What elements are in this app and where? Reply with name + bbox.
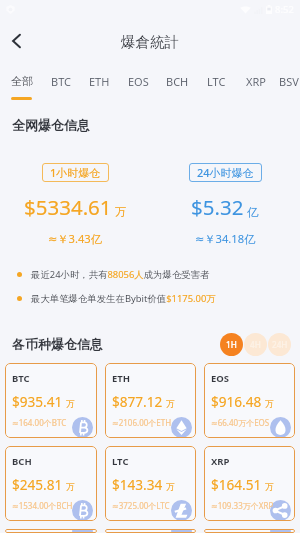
staticText: BTC: [12, 372, 30, 385]
staticText: 万: [66, 399, 75, 410]
staticText: 万: [166, 482, 175, 493]
staticText: 最近24小时，共有88056人成为爆仓受害者: [31, 268, 210, 281]
staticText: 爆倉統計: [121, 33, 179, 51]
button[interactable]: BSV: [275, 62, 300, 100]
staticText: LTC: [207, 74, 226, 89]
staticText: 24H: [272, 339, 288, 350]
staticText: $245.81: [12, 475, 63, 494]
button[interactable]: 4H: [244, 333, 267, 356]
button[interactable]: EOS: [119, 62, 158, 100]
staticText: 万: [265, 482, 274, 493]
staticText: ≈￥3.43亿: [48, 231, 102, 246]
button[interactable]: BCH: [5, 446, 97, 521]
staticText: 全网爆仓信息: [12, 117, 90, 133]
staticText: $916.48: [211, 392, 262, 411]
staticText: LTC: [112, 455, 129, 468]
staticText: 1H: [226, 339, 237, 350]
button[interactable]: 全部: [2, 62, 41, 100]
button[interactable]: LTC: [105, 446, 196, 521]
button[interactable]: XRP: [236, 62, 275, 100]
staticText: $877.12: [112, 392, 163, 411]
button[interactable]: XRP: [204, 446, 295, 521]
button[interactable]: EOS: [204, 363, 295, 438]
button[interactable]: ETH: [105, 363, 196, 438]
staticText: 万: [265, 399, 274, 410]
staticText: ≈109.33万个XRP: [211, 500, 274, 511]
staticText: ETH: [112, 372, 131, 385]
button[interactable]: 1H: [220, 333, 243, 356]
button[interactable]: BTC: [41, 62, 80, 100]
staticText: 4H: [250, 339, 261, 350]
staticText: 各币种爆仓信息: [12, 336, 103, 352]
staticText: BCH: [166, 74, 189, 89]
staticText: BSV: [279, 74, 299, 89]
staticText: $5334.61: [24, 193, 112, 221]
button[interactable]: ETC: [5, 529, 97, 533]
staticText: 1小时爆仓: [50, 165, 101, 180]
staticText: $164.51: [211, 475, 262, 494]
staticText: ≈2106.00个ETH: [112, 417, 172, 428]
staticText: ≈164.00个BTC: [12, 417, 67, 428]
staticText: 万: [166, 399, 175, 410]
staticText: 最大单笔爆仓单发生在Bybit价值$1175.00万: [31, 292, 216, 305]
staticText: 全部: [11, 74, 33, 88]
button[interactable]: TRX: [105, 529, 196, 533]
staticText: 万: [66, 482, 75, 493]
button[interactable]: Back: [0, 19, 33, 62]
button[interactable]: ETH: [80, 62, 119, 100]
staticText: ≈1534.00个BCH: [12, 500, 73, 511]
button[interactable]: 1小时爆仓: [42, 163, 109, 182]
button[interactable]: BCH: [158, 62, 197, 100]
staticText: ≈3725.00个LTC: [112, 500, 170, 511]
button[interactable]: 24小时爆仓: [189, 163, 262, 182]
button[interactable]: BSV: [204, 529, 295, 533]
staticText: EOS: [211, 372, 230, 385]
staticText: 万: [115, 205, 127, 219]
staticText: $143.34: [112, 475, 163, 494]
staticText: XRP: [246, 74, 266, 89]
staticText: XRP: [211, 455, 230, 468]
staticText: ≈66.40万个EOS: [211, 417, 270, 428]
staticText: ETH: [89, 74, 110, 89]
staticText: ≈￥34.18亿: [195, 231, 256, 246]
button[interactable]: 24H: [268, 333, 291, 356]
button[interactable]: LTC: [197, 62, 236, 100]
staticText: 24小时爆仓: [197, 165, 254, 180]
staticText: $5.32: [191, 193, 244, 221]
staticText: BTC: [51, 74, 71, 89]
staticText: EOS: [128, 74, 149, 89]
button[interactable]: BTC: [5, 363, 97, 438]
staticText: BCH: [12, 455, 32, 468]
staticText: 亿: [247, 205, 259, 219]
staticText: $935.41: [12, 392, 63, 411]
